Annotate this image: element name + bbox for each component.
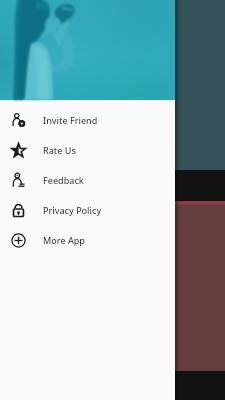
button[interactable]: Invite Friend	[0, 105, 175, 135]
button[interactable]: More App	[0, 225, 175, 255]
staticText: Feedback	[43, 174, 84, 186]
button[interactable]: Feedback	[0, 165, 175, 195]
staticText: Rate Us	[43, 144, 76, 156]
button[interactable]: Privacy Policy	[0, 195, 175, 225]
staticText: More App	[43, 234, 85, 246]
button[interactable]: Rate Us	[0, 135, 175, 165]
staticText: Invite Friend	[43, 114, 98, 126]
staticText: Privacy Policy	[43, 204, 102, 216]
